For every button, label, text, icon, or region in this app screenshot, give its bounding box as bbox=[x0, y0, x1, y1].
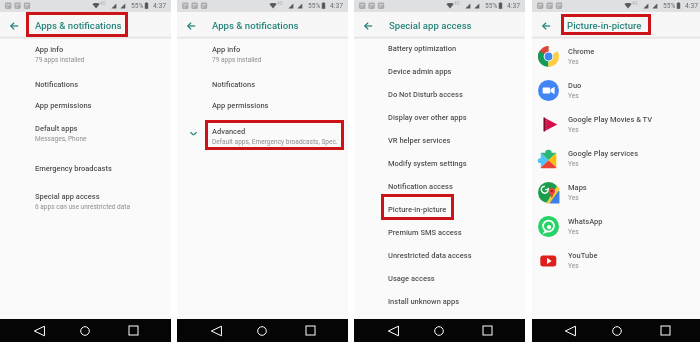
staticText: Advanced bbox=[212, 127, 246, 136]
staticText: 4G bbox=[632, 1, 638, 6]
button[interactable]: Home bbox=[78, 319, 92, 342]
button[interactable]: WhatsApp bbox=[532, 209, 700, 243]
staticText: Apps & notifications bbox=[35, 20, 122, 31]
staticText: 4:37 bbox=[507, 2, 521, 10]
button[interactable]: Unrestricted data access bbox=[354, 251, 525, 260]
button[interactable]: Duo bbox=[532, 73, 700, 107]
button[interactable]: Home bbox=[610, 319, 624, 342]
staticText: Usage access bbox=[388, 274, 435, 283]
staticText: Display over other apps bbox=[388, 113, 467, 122]
staticText: Modify system settings bbox=[388, 159, 467, 168]
button[interactable]: Back bbox=[354, 319, 432, 342]
button[interactable]: Google Play Movies & TV bbox=[532, 107, 700, 141]
button[interactable]: Home bbox=[432, 319, 446, 342]
staticText: Install unknown apps bbox=[388, 297, 460, 306]
button[interactable]: Back bbox=[0, 319, 78, 342]
staticText: Special app access bbox=[35, 192, 100, 201]
button[interactable]: Navigate up bbox=[182, 17, 200, 35]
button[interactable]: Default apps bbox=[0, 124, 171, 143]
staticText: Device admin apps bbox=[388, 67, 452, 76]
staticText: Yes bbox=[568, 92, 579, 100]
button[interactable]: Notification access bbox=[354, 182, 525, 191]
staticText: Yes bbox=[568, 228, 579, 236]
staticText: 4:37 bbox=[685, 2, 699, 10]
button[interactable]: Notifications bbox=[177, 80, 348, 89]
button[interactable]: VR helper services bbox=[354, 136, 525, 145]
button[interactable]: Recent apps bbox=[658, 319, 672, 342]
staticText: Google Play Movies & TV bbox=[568, 115, 653, 124]
button[interactable]: App info bbox=[177, 45, 348, 64]
staticText: 79 apps installed bbox=[212, 56, 262, 64]
staticText: Duo bbox=[568, 81, 582, 90]
staticText: YouTube bbox=[568, 251, 598, 260]
staticText: Premium SMS access bbox=[388, 228, 462, 237]
staticText: 55% bbox=[308, 2, 321, 10]
button[interactable]: Picture-in-picture bbox=[354, 205, 525, 214]
button[interactable]: Home bbox=[255, 319, 269, 342]
button[interactable]: Navigate up bbox=[5, 17, 23, 35]
button[interactable]: Google Play services bbox=[532, 141, 700, 175]
button[interactable]: Battery optimization bbox=[354, 44, 525, 53]
staticText: Messages, Phone bbox=[35, 135, 87, 143]
staticText: Emergency broadcasts bbox=[35, 164, 112, 173]
button[interactable]: Install unknown apps bbox=[354, 297, 525, 306]
button[interactable]: App info bbox=[0, 45, 171, 64]
button[interactable]: Do Not Disturb access bbox=[354, 90, 525, 99]
staticText: Google Play services bbox=[568, 149, 639, 158]
button[interactable]: Back bbox=[532, 319, 609, 342]
staticText: Yes bbox=[568, 194, 579, 202]
staticText: 55% bbox=[663, 2, 676, 10]
staticText: Unrestricted data access bbox=[388, 251, 472, 260]
staticText: 4G bbox=[454, 1, 460, 6]
staticText: 6 apps can use unrestricted data bbox=[35, 203, 131, 211]
button[interactable]: Special app access bbox=[0, 192, 171, 211]
button[interactable]: Back bbox=[177, 319, 255, 342]
button[interactable]: Navigate up bbox=[537, 17, 555, 35]
button[interactable]: Recent apps bbox=[480, 319, 494, 342]
button[interactable]: Usage access bbox=[354, 274, 525, 283]
staticText: Picture-in-picture bbox=[388, 205, 447, 214]
staticText: Maps bbox=[568, 183, 587, 192]
staticText: Apps & notifications bbox=[212, 20, 299, 31]
staticText: Default apps bbox=[35, 124, 78, 133]
staticText: Notifications bbox=[35, 80, 79, 89]
button[interactable]: Recent apps bbox=[126, 319, 140, 342]
staticText: 55% bbox=[485, 2, 498, 10]
button[interactable]: Device admin apps bbox=[354, 67, 525, 76]
staticText: Notifications bbox=[212, 80, 256, 89]
button[interactable]: App permissions bbox=[0, 101, 171, 110]
button[interactable]: Advanced bbox=[177, 127, 348, 146]
button[interactable]: Premium SMS access bbox=[354, 228, 525, 237]
button[interactable]: Maps bbox=[532, 175, 700, 209]
staticText: 4:37 bbox=[330, 2, 344, 10]
staticText: App info bbox=[35, 45, 64, 54]
button[interactable]: Recent apps bbox=[303, 319, 317, 342]
staticText: VR helper services bbox=[388, 136, 451, 145]
staticText: Picture-in-picture bbox=[567, 20, 642, 31]
button[interactable]: App permissions bbox=[177, 101, 348, 110]
staticText: Notification access bbox=[388, 182, 453, 191]
staticText: App info bbox=[212, 45, 241, 54]
button[interactable]: Notifications bbox=[0, 80, 171, 89]
staticText: App permissions bbox=[212, 101, 269, 110]
staticText: Yes bbox=[568, 126, 579, 134]
button[interactable]: YouTube bbox=[532, 243, 700, 277]
button[interactable]: Navigate up bbox=[359, 17, 377, 35]
staticText: Yes bbox=[568, 58, 579, 66]
button[interactable]: Modify system settings bbox=[354, 159, 525, 168]
staticText: Yes bbox=[568, 262, 579, 270]
button[interactable]: Display over other apps bbox=[354, 113, 525, 122]
staticText: Chrome bbox=[568, 47, 595, 56]
staticText: Yes bbox=[568, 160, 579, 168]
staticText: 4G bbox=[100, 1, 106, 6]
staticText: WhatsApp bbox=[568, 217, 603, 226]
staticText: Special app access bbox=[389, 20, 472, 31]
staticText: Default apps, Emergency broadcasts, Spec… bbox=[212, 138, 338, 146]
button[interactable]: Emergency broadcasts bbox=[0, 164, 171, 173]
button[interactable]: Expand bbox=[186, 126, 200, 140]
staticText: 79 apps installed bbox=[35, 56, 85, 64]
staticText: Battery optimization bbox=[388, 44, 457, 53]
staticText: App permissions bbox=[35, 101, 92, 110]
staticText: 4G bbox=[277, 1, 283, 6]
button[interactable]: Chrome bbox=[532, 39, 700, 73]
